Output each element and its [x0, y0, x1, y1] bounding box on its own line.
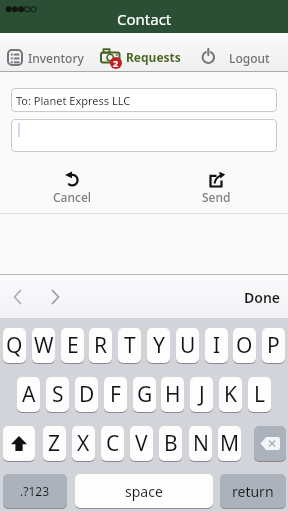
staticText: P: [267, 331, 280, 360]
button[interactable]: 2: [96, 35, 184, 70]
staticText: Z: [48, 429, 61, 458]
button[interactable]: V: [130, 426, 153, 461]
button[interactable]: B: [159, 426, 182, 461]
staticText: To: Planet Express LLC: [16, 93, 131, 108]
staticText: N: [193, 429, 209, 458]
staticText: 2: [113, 57, 119, 69]
button[interactable]: Q: [3, 328, 26, 363]
staticText: space: [125, 482, 163, 501]
staticText: D: [79, 380, 95, 409]
staticText: C: [106, 429, 120, 458]
button[interactable]: X: [72, 426, 95, 461]
button[interactable]: M: [218, 426, 241, 461]
button[interactable]: S: [46, 377, 69, 412]
staticText: S: [52, 380, 64, 409]
button[interactable]: Logout: [198, 35, 282, 70]
staticText: M: [220, 429, 240, 458]
staticText: return: [232, 482, 274, 501]
staticText: G: [137, 380, 153, 409]
button[interactable]: R: [89, 328, 112, 363]
staticText: Inventory: [28, 50, 84, 66]
staticText: E: [67, 331, 79, 360]
staticText: J: [199, 380, 205, 409]
staticText: Contact: [117, 9, 172, 29]
staticText: Q: [6, 331, 23, 360]
button[interactable]: [44, 285, 67, 309]
staticText: Logout: [229, 50, 270, 66]
button[interactable]: Send: [144, 160, 288, 213]
button[interactable]: N: [189, 426, 212, 461]
staticText: V: [135, 429, 148, 458]
button[interactable]: Inventory: [4, 35, 88, 70]
button[interactable]: [3, 426, 35, 461]
button[interactable]: Y: [147, 328, 170, 363]
button[interactable]: A: [17, 377, 40, 412]
button[interactable]: K: [219, 377, 242, 412]
staticText: F: [110, 380, 121, 409]
staticText: T: [124, 331, 136, 360]
staticText: Send: [202, 189, 231, 205]
button[interactable]: F: [104, 377, 127, 412]
button[interactable]: E: [61, 328, 84, 363]
staticText: K: [224, 380, 237, 409]
button[interactable]: O: [233, 328, 256, 363]
staticText: O: [236, 331, 253, 360]
staticText: Y: [153, 331, 165, 360]
button[interactable]: G: [133, 377, 156, 412]
button[interactable]: P: [262, 328, 285, 363]
button[interactable]: T: [118, 328, 141, 363]
button[interactable]: D: [75, 377, 98, 412]
button[interactable]: [254, 426, 286, 461]
button[interactable]: J: [190, 377, 213, 412]
button[interactable]: Done: [244, 288, 281, 307]
staticText: .?123: [20, 483, 50, 499]
staticText: A: [22, 380, 36, 409]
button[interactable]: .?123: [3, 474, 67, 508]
button[interactable]: L: [248, 377, 271, 412]
button[interactable]: Cancel: [0, 160, 144, 213]
staticText: Cancel: [53, 189, 92, 205]
staticText: H: [165, 380, 181, 409]
button[interactable]: [11, 119, 277, 152]
button[interactable]: [6, 285, 29, 309]
button[interactable]: I: [205, 328, 228, 363]
staticText: Done: [244, 288, 281, 307]
staticText: W: [34, 331, 54, 360]
staticText: I: [213, 331, 221, 360]
staticText: Requests: [126, 49, 181, 65]
staticText: L: [254, 380, 266, 409]
staticText: R: [94, 331, 108, 360]
button[interactable]: return: [220, 474, 286, 508]
button[interactable]: To: Planet Express LLC: [11, 88, 277, 112]
button[interactable]: H: [161, 377, 184, 412]
button[interactable]: W: [32, 328, 55, 363]
button[interactable]: C: [101, 426, 124, 461]
button[interactable]: space: [75, 474, 213, 508]
staticText: U: [180, 331, 196, 360]
button[interactable]: Z: [43, 426, 66, 461]
button[interactable]: U: [176, 328, 199, 363]
staticText: X: [77, 429, 90, 458]
staticText: B: [164, 429, 178, 458]
